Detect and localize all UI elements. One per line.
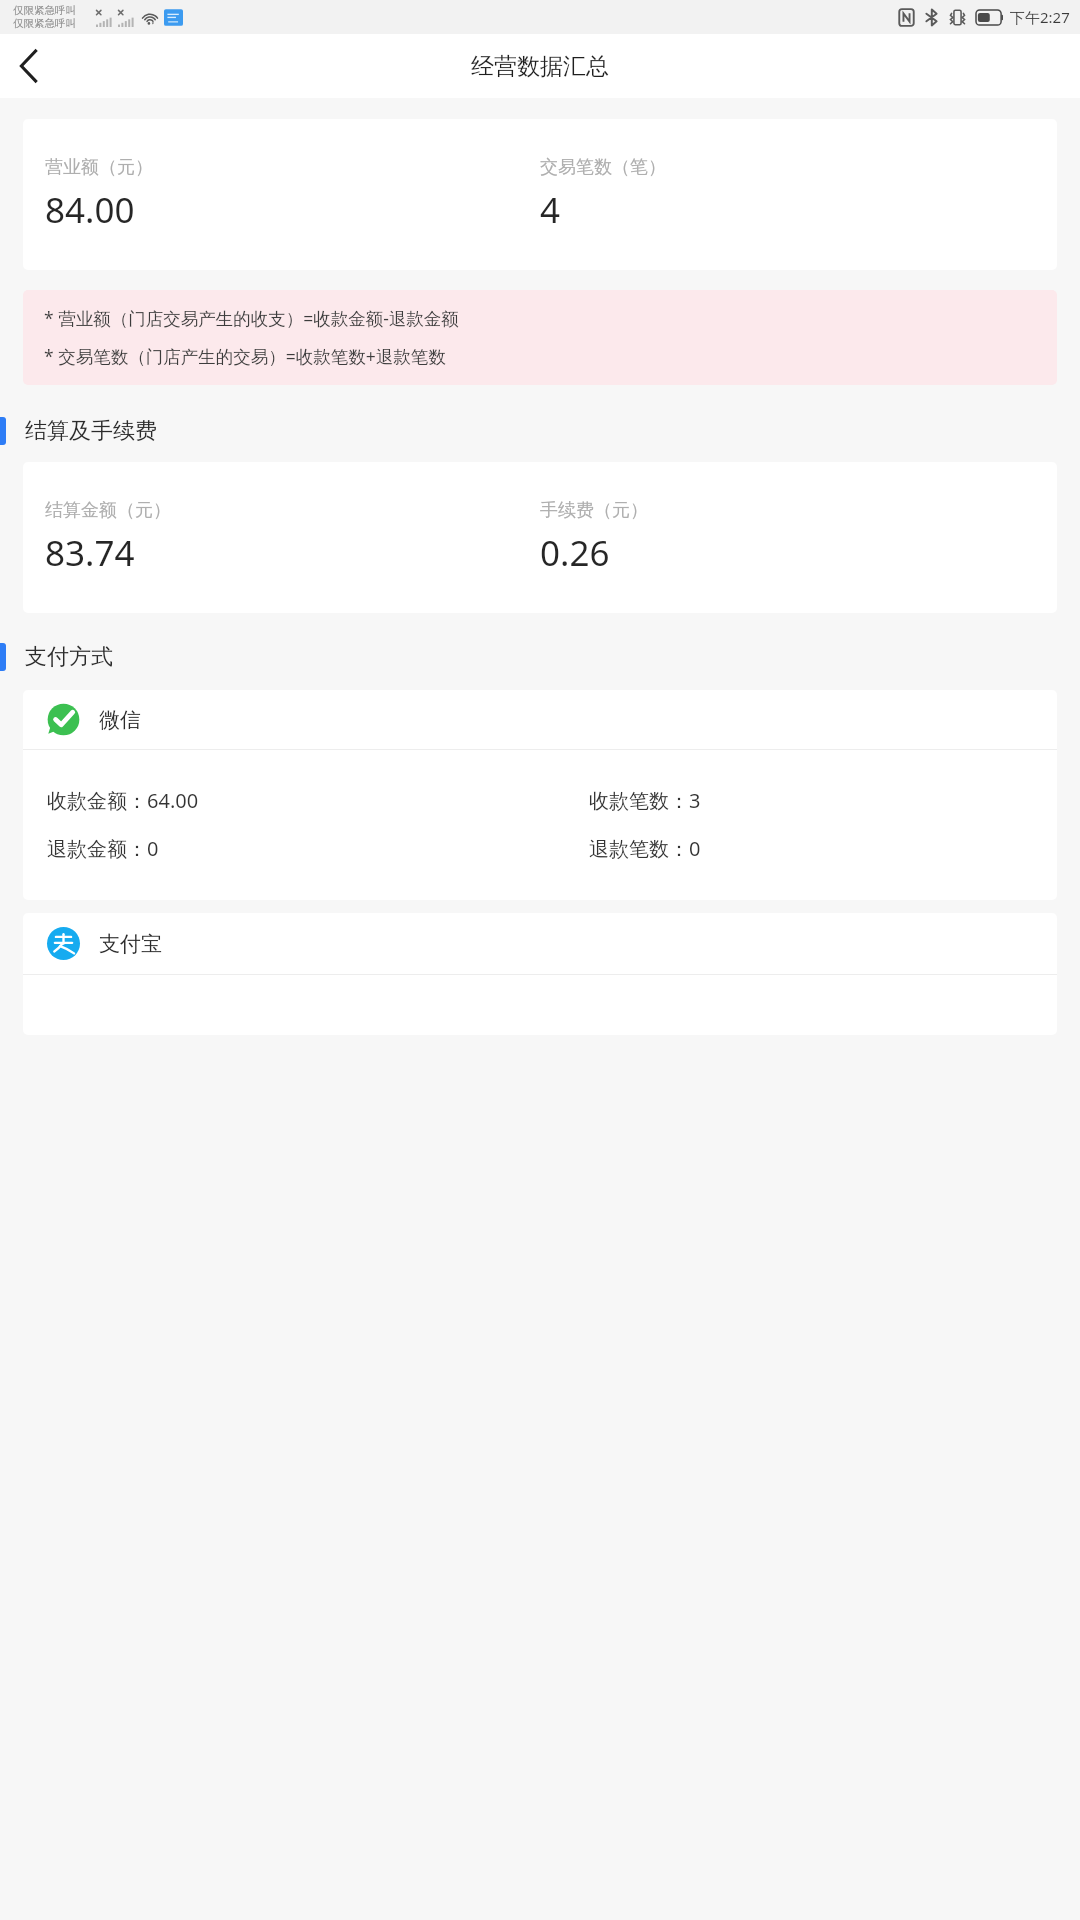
button[interactable]: 返回 xyxy=(0,38,56,94)
staticText: 营业额（元） xyxy=(45,156,153,179)
staticText: 经营数据汇总 xyxy=(471,52,609,81)
staticText: 退款笔数：0 xyxy=(589,835,1033,862)
staticText: 退款金额：0 xyxy=(47,835,589,862)
staticText: 手续费（元） xyxy=(540,499,648,522)
button[interactable]: 营业额（元） xyxy=(23,119,1057,270)
staticText: 交易笔数（笔） xyxy=(540,156,666,179)
staticText: 支付宝 xyxy=(99,931,162,957)
staticText: 收款金额：64.00 xyxy=(47,787,589,814)
staticText: 0.26 xyxy=(540,529,610,577)
button[interactable]: 微信 xyxy=(23,690,1057,900)
staticText: * 交易笔数（门店产生的交易）=收款笔数+退款笔数 xyxy=(44,344,446,368)
staticText: 84.00 xyxy=(45,186,135,234)
staticText: 4 xyxy=(540,186,561,234)
staticText: 83.74 xyxy=(45,529,135,577)
staticText: * 营业额（门店交易产生的收支）=收款金额-退款金额 xyxy=(44,306,459,330)
staticText: 收款笔数：3 xyxy=(589,787,1033,814)
staticText: 微信 xyxy=(99,707,141,733)
staticText: 仅限紧急呼叫 xyxy=(13,4,76,17)
button[interactable]: 支付宝 xyxy=(23,913,1057,1035)
button[interactable]: 结算金额（元） xyxy=(23,462,1057,613)
staticText: 结算及手续费 xyxy=(25,417,157,445)
staticText: 结算金额（元） xyxy=(45,499,171,522)
staticText: 支付方式 xyxy=(25,643,113,671)
staticText: 仅限紧急呼叫 xyxy=(13,17,76,30)
staticText: 下午2:27 xyxy=(1010,7,1070,27)
